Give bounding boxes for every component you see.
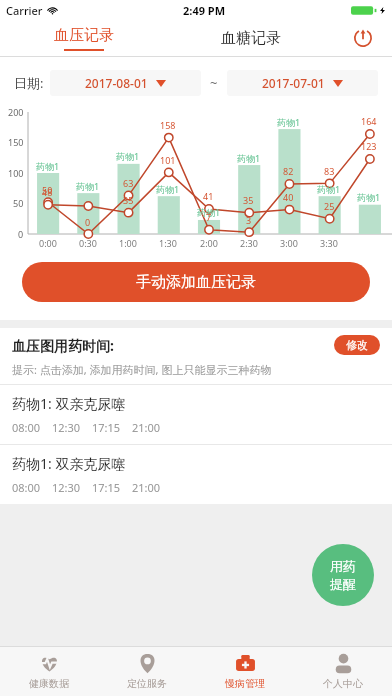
staticText: 健康数据 xyxy=(29,677,69,690)
staticText: 21:00 xyxy=(132,480,161,495)
staticText: 血压记录 xyxy=(54,26,114,45)
staticText: 血糖记录 xyxy=(221,29,281,48)
button[interactable]: 2017-08-01 xyxy=(50,70,201,96)
staticText: 17:15 xyxy=(92,480,121,495)
staticText: 药物1 xyxy=(36,160,60,172)
staticText: 48 xyxy=(42,186,53,198)
button[interactable]: 2017-07-01 xyxy=(227,70,378,96)
staticText: 修改 xyxy=(346,338,368,352)
staticText: 2:30 xyxy=(240,237,258,249)
staticText: 0:30 xyxy=(79,237,97,249)
staticText: 164 xyxy=(361,115,377,127)
staticText: 150 xyxy=(8,136,24,148)
staticText: 0 xyxy=(18,228,24,240)
staticText: 药物1 xyxy=(116,150,140,162)
staticText: 35 xyxy=(243,194,254,206)
staticText: 0 xyxy=(85,216,91,228)
button[interactable]: 定位服务 xyxy=(98,647,196,696)
staticText: 21:00 xyxy=(132,420,161,435)
staticText: 药物1 xyxy=(76,180,100,192)
staticText: 1:00 xyxy=(119,237,137,249)
staticText: 药物1: 双亲克尿噻 xyxy=(12,454,126,473)
staticText: 123 xyxy=(361,140,377,152)
staticText: 手动添加血压记录 xyxy=(136,273,256,292)
staticText: 3 xyxy=(246,214,252,226)
button[interactable]: 血糖记录 xyxy=(167,20,334,56)
staticText: 0:00 xyxy=(39,237,57,249)
staticText: 12:30 xyxy=(52,480,81,495)
staticText: 日期: xyxy=(14,74,44,92)
staticText: 50 xyxy=(13,197,24,209)
button[interactable]: 手动添加血压记录 xyxy=(22,262,370,302)
staticText: 08:00 xyxy=(12,480,41,495)
staticText: 25 xyxy=(324,200,335,212)
staticText: 2017-08-01 xyxy=(85,75,148,91)
staticText: 1:30 xyxy=(159,237,177,249)
staticText: 17:15 xyxy=(92,420,121,435)
button[interactable]: 健康数据 xyxy=(0,647,98,696)
staticText: 41 xyxy=(203,190,214,202)
staticText: 药物1 xyxy=(277,116,301,128)
staticText: 提醒 xyxy=(330,576,356,592)
staticText: 3:00 xyxy=(280,237,298,249)
staticText: 158 xyxy=(160,119,176,131)
button[interactable]: 修改 xyxy=(334,335,380,355)
staticText: 12:30 xyxy=(52,420,81,435)
staticText: 100 xyxy=(8,167,24,179)
button[interactable]: 用药 xyxy=(312,544,374,606)
staticText: 2:49 PM xyxy=(183,3,226,18)
staticText: 药物1 xyxy=(317,183,341,195)
staticText: 慢病管理 xyxy=(225,677,265,690)
staticText: 63 xyxy=(123,177,134,189)
staticText: 定位服务 xyxy=(127,677,167,690)
staticText: 40 xyxy=(283,191,294,203)
button[interactable]: 血压记录 xyxy=(0,20,167,56)
staticText: 3:30 xyxy=(320,237,338,249)
staticText: 用药 xyxy=(330,558,356,574)
staticText: 83 xyxy=(324,165,335,177)
staticText: 药物1 xyxy=(357,191,381,203)
staticText: 82 xyxy=(283,165,294,177)
staticText: Carrier xyxy=(6,3,43,18)
staticText: 个人中心 xyxy=(323,677,363,690)
staticText: 药物1 xyxy=(237,152,261,164)
staticText: 35 xyxy=(123,194,134,206)
staticText: 50 xyxy=(42,184,53,196)
button[interactable]: 药物1: 双亲克尿噻 xyxy=(0,385,392,444)
staticText: ~ xyxy=(210,74,218,92)
button[interactable]: 药物1: 双亲克尿噻 xyxy=(0,445,392,504)
staticText: 2:00 xyxy=(200,237,218,249)
staticText: 药物1 xyxy=(156,183,180,195)
staticText: 药物1 xyxy=(197,206,221,218)
staticText: 药物1: 双亲克尿噻 xyxy=(12,394,126,413)
button[interactable]: Sync xyxy=(334,20,392,56)
staticText: 08:00 xyxy=(12,420,41,435)
staticText: 2017-07-01 xyxy=(262,75,325,91)
staticText: 101 xyxy=(160,154,176,166)
staticText: 7 xyxy=(206,211,212,223)
button[interactable]: 个人中心 xyxy=(294,647,392,696)
button[interactable]: 慢病管理 xyxy=(196,647,294,696)
staticText: 提示: 点击添加, 添加用药时间, 图上只能显示三种药物 xyxy=(12,362,272,377)
staticText: 血压图用药时间: xyxy=(12,336,114,355)
staticText: 200 xyxy=(8,106,24,118)
